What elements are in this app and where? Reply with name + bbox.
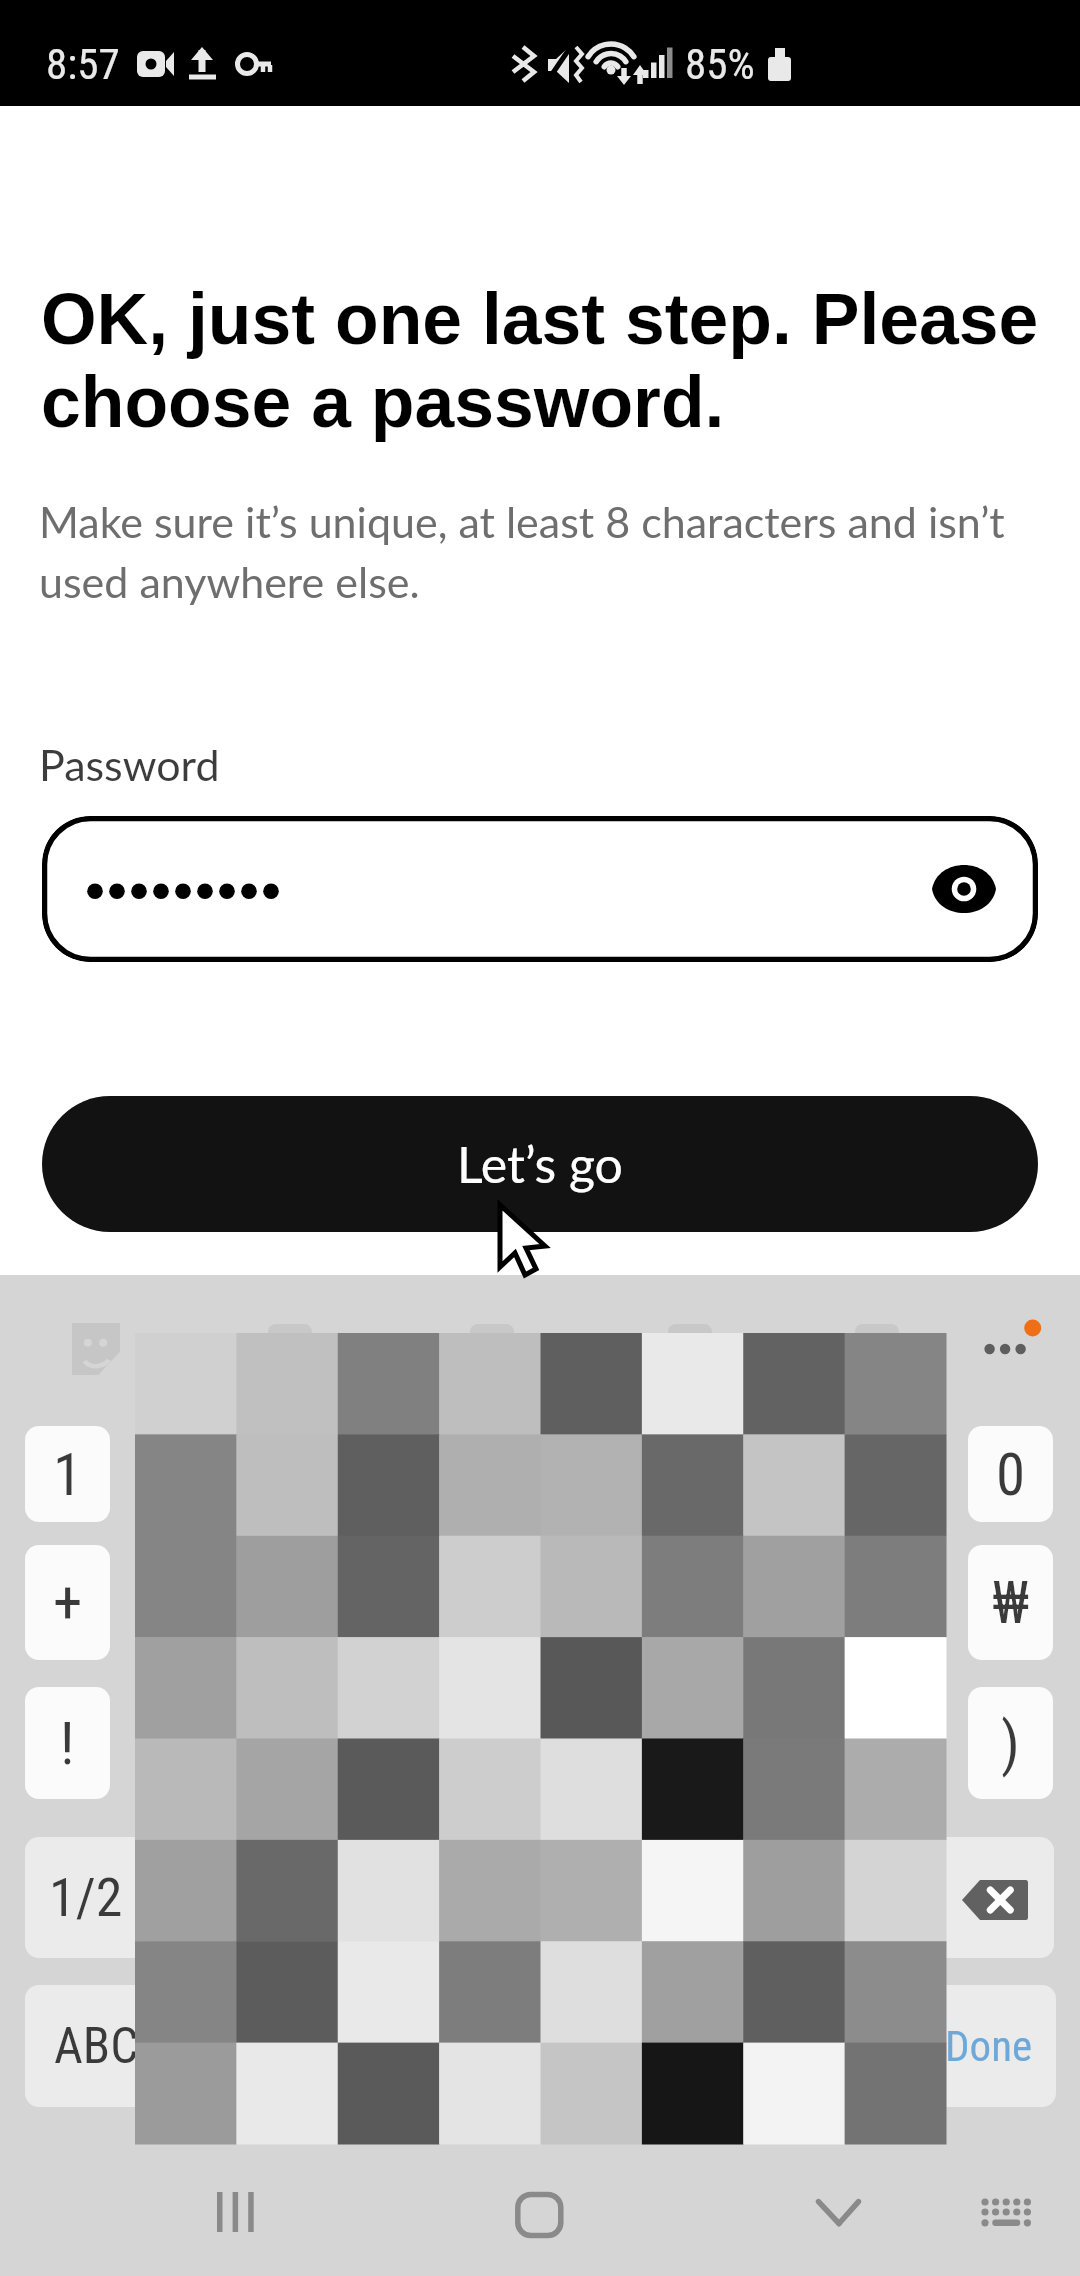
staticText: !	[60, 1709, 75, 1778]
button[interactable]: Stickers	[52, 1303, 140, 1391]
button[interactable]: )	[968, 1687, 1053, 1799]
staticText: ₩	[992, 1568, 1030, 1637]
staticText: 1	[53, 1440, 83, 1509]
staticText: Done	[945, 2021, 1033, 2071]
staticText: 0	[996, 1440, 1026, 1509]
staticText: 85%	[685, 39, 755, 89]
staticText: Password	[39, 739, 220, 791]
staticText: ABC	[54, 2017, 139, 2076]
button[interactable]	[922, 1837, 1054, 1958]
button[interactable]: +	[25, 1545, 110, 1660]
button[interactable]: Let’s go	[42, 1096, 1038, 1232]
staticText: )	[1001, 1709, 1020, 1778]
button[interactable]: Change keyboard	[955, 2162, 1055, 2262]
staticText: Let’s go	[457, 1134, 623, 1194]
staticText: 1/2	[49, 1866, 123, 1929]
button[interactable]: 1/2	[25, 1837, 147, 1958]
button[interactable]: Recent apps	[170, 2162, 300, 2262]
button[interactable]: Home	[480, 2162, 595, 2262]
button[interactable]: ABC	[25, 1985, 167, 2107]
staticText: +	[53, 1568, 83, 1637]
button[interactable]: !	[25, 1687, 110, 1799]
staticText: OK, just one last step. Please choose a …	[41, 279, 1061, 442]
staticText: 8:57	[46, 39, 120, 89]
button[interactable]: 0	[968, 1426, 1053, 1522]
button[interactable]: Show password	[42, 816, 1038, 962]
button[interactable]: 1	[25, 1426, 110, 1522]
button[interactable]: More options	[960, 1305, 1050, 1393]
button[interactable]: ₩	[968, 1545, 1053, 1660]
button[interactable]: Done	[922, 1985, 1056, 2107]
staticText: Make sure it’s unique, at least 8 charac…	[39, 496, 1034, 607]
button[interactable]: Hide keyboard	[790, 2162, 890, 2262]
button[interactable]: Show password	[904, 829, 1024, 949]
